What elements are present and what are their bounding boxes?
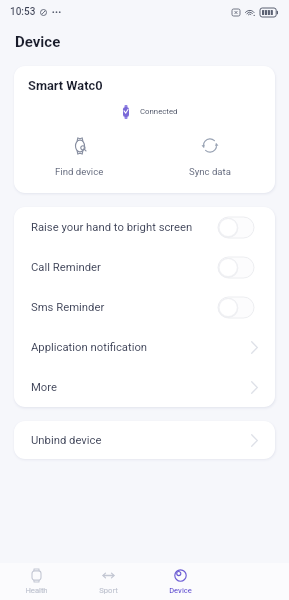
button[interactable]: Raise your hand to bright screen [14,207,275,247]
button[interactable]: Application notification [14,327,275,367]
staticText: More [31,381,58,394]
button[interactable]: Unbind device [14,421,275,459]
staticText: Smart Watc0 [28,78,103,93]
staticText: Sync data [189,166,231,177]
button[interactable]: Find device [37,137,122,177]
button[interactable]: More [14,367,275,407]
button[interactable]: Device [144,563,216,600]
staticText: Device [15,33,61,51]
staticText: Application notification [31,341,148,354]
staticText: Call Reminder [31,261,101,274]
staticText: 10:53 [10,6,36,18]
staticText: Sms Reminder [31,301,105,314]
staticText: Sport [99,586,118,595]
button[interactable]: Sms Reminder [14,287,275,327]
button[interactable]: Call Reminder [14,247,275,287]
button[interactable]: Sport [72,563,144,600]
staticText: Find device [55,166,104,177]
staticText: Connected [140,107,178,116]
button[interactable]: Toggle [218,217,254,238]
staticText: Health [25,586,48,595]
staticText: Raise your hand to bright screen [31,221,193,234]
staticText: Device [169,586,192,595]
button[interactable]: Toggle [218,297,254,318]
button[interactable]: Toggle [218,257,254,278]
button[interactable]: Health [0,563,72,600]
staticText: Unbind device [31,434,102,447]
button[interactable]: Sync data [171,137,249,177]
